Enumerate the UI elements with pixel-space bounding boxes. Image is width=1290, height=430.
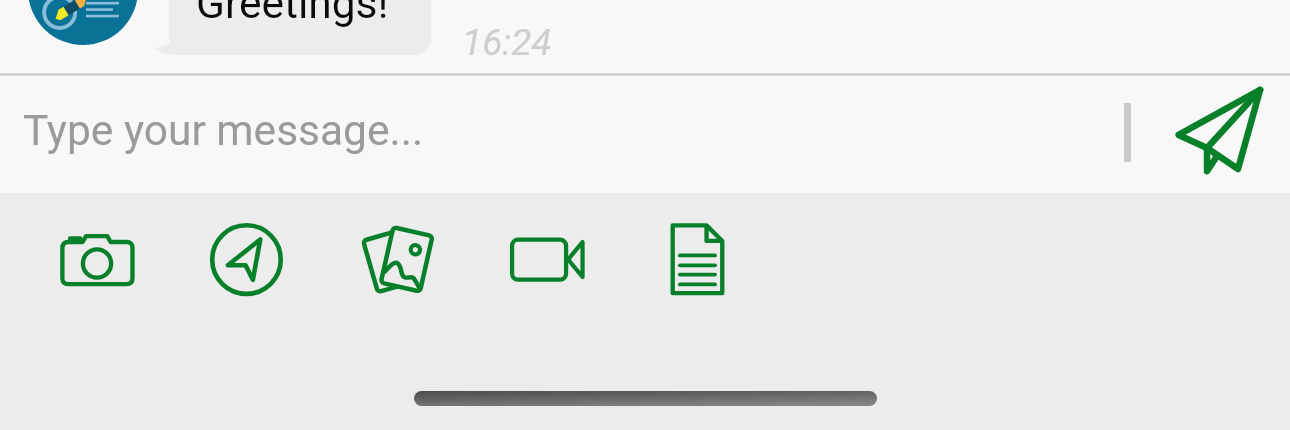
button[interactable]: Video (502, 216, 592, 306)
staticText: Greetings! (196, 0, 389, 29)
button[interactable]: Gallery (352, 216, 442, 306)
button[interactable]: Document (651, 216, 741, 306)
staticText: 16:24 (462, 21, 552, 64)
button[interactable]: Send (1174, 86, 1270, 182)
button[interactable]: Share location (203, 216, 293, 306)
button[interactable]: Type your message... (0, 76, 1160, 193)
staticText: Type your message... (23, 106, 424, 156)
button[interactable]: Take photo (54, 216, 144, 306)
